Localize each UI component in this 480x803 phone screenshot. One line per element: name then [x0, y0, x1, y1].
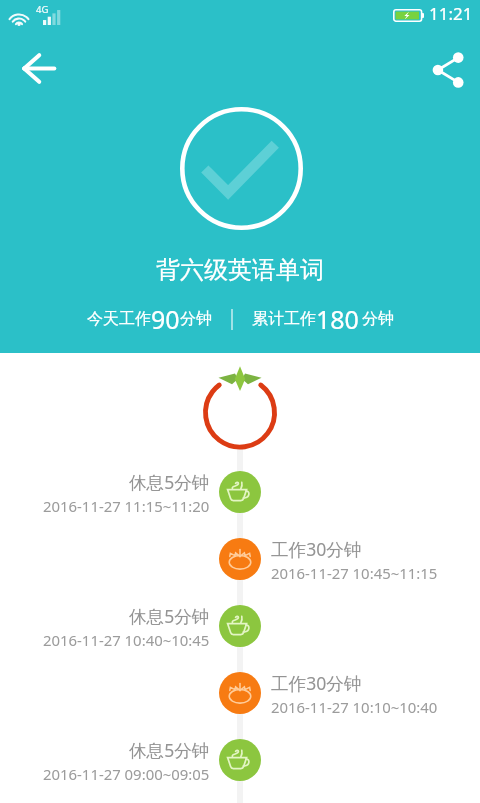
- staticText: 2016-11-27 09:00~09:05: [43, 764, 210, 784]
- button[interactable]: 休息5分钟: [0, 464, 480, 520]
- staticText: 工作30分钟: [271, 671, 362, 695]
- staticText: 2016-11-27 11:15~11:20: [43, 496, 210, 516]
- button[interactable]: 工作30分钟: [0, 531, 480, 587]
- staticText: 分钟: [180, 309, 212, 329]
- staticText: 2016-11-27 10:40~10:45: [43, 630, 210, 650]
- staticText: 2016-11-27 10:10~10:40: [271, 697, 438, 717]
- staticText: 11:21: [429, 2, 473, 25]
- staticText: 背六级英语单词: [156, 255, 324, 285]
- staticText: 今天工作: [87, 309, 151, 329]
- staticText: 休息5分钟: [129, 470, 210, 494]
- staticText: 2016-11-27 10:45~11:15: [271, 563, 438, 583]
- staticText: 180: [316, 302, 359, 336]
- staticText: 休息5分钟: [129, 738, 210, 762]
- staticText: 分钟: [362, 309, 394, 329]
- button[interactable]: Share: [424, 46, 472, 94]
- staticText: 累计工作: [252, 309, 316, 329]
- staticText: 工作30分钟: [271, 537, 362, 561]
- staticText: 90: [151, 302, 180, 336]
- button[interactable]: 休息5分钟: [0, 732, 480, 788]
- button[interactable]: Back: [10, 45, 58, 93]
- button[interactable]: 休息5分钟: [0, 598, 480, 654]
- staticText: 4G: [36, 3, 49, 16]
- button[interactable]: 工作30分钟: [0, 665, 480, 721]
- staticText: 休息5分钟: [129, 604, 210, 628]
